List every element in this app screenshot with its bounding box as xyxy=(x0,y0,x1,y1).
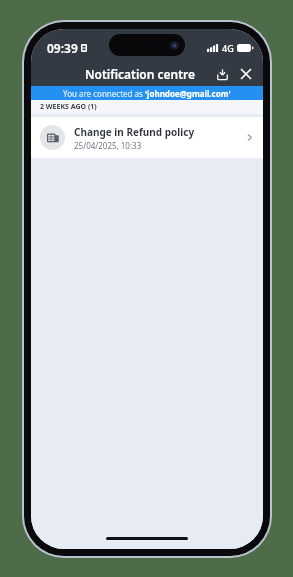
button[interactable]: Export xyxy=(211,63,233,85)
staticText: 2 WEEKS AGO (1) xyxy=(40,102,97,112)
staticText: 09:39 xyxy=(47,40,78,56)
staticText: 4G xyxy=(222,42,234,54)
staticText: You are connected as 'johndoe@gmail.com' xyxy=(63,88,231,99)
staticText: Change in Refund policy xyxy=(74,125,195,139)
button[interactable]: Change in Refund policy xyxy=(31,117,263,158)
button[interactable]: Close xyxy=(235,63,257,85)
button[interactable]: You are connected as 'johndoe@gmail.com' xyxy=(31,86,263,100)
staticText: 25/04/2025, 10:33 xyxy=(74,140,142,151)
staticText: Notification centre xyxy=(85,66,196,82)
